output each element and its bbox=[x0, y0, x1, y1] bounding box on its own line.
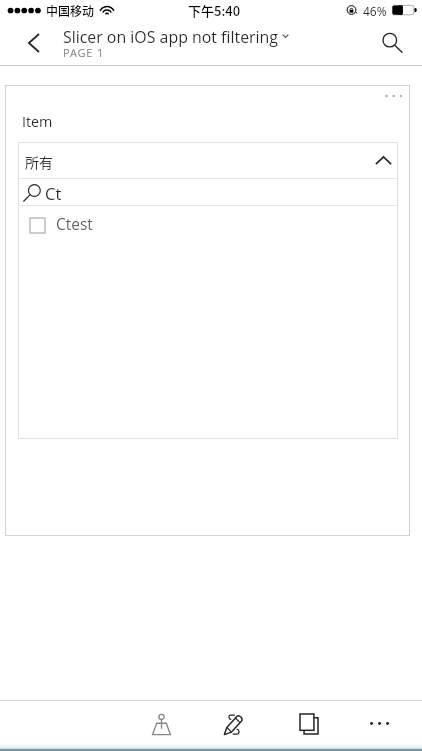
staticText: Ctest bbox=[56, 213, 93, 234]
button[interactable]: Pages bbox=[288, 702, 330, 746]
staticText: 下午5:40 bbox=[188, 1, 241, 20]
button[interactable]: Ctest bbox=[18, 206, 398, 238]
button[interactable]: Annotate bbox=[213, 702, 255, 746]
button[interactable]: More options bbox=[380, 87, 406, 105]
staticText: Ct bbox=[45, 182, 62, 204]
button[interactable]: More options bbox=[358, 701, 400, 745]
staticText: PAGE 1 bbox=[63, 45, 105, 60]
staticText: 46% bbox=[363, 3, 387, 19]
button[interactable]: Filters bbox=[140, 702, 182, 746]
button[interactable]: Search bbox=[374, 21, 422, 66]
button[interactable]: Back bbox=[0, 21, 62, 66]
staticText: 所有 bbox=[25, 152, 53, 172]
staticText: 中国移动 bbox=[46, 2, 95, 19]
staticText: Item bbox=[22, 112, 53, 131]
staticText: Slicer on iOS app not filtering bbox=[63, 26, 279, 48]
button[interactable]: 所有 bbox=[18, 142, 398, 178]
